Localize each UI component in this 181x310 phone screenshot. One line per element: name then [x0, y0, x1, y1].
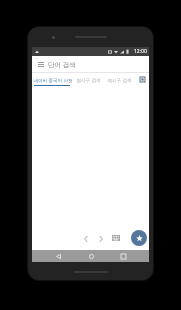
button[interactable]: Menu	[36, 60, 45, 69]
button[interactable]: 예시구 검색	[104, 73, 135, 86]
button[interactable]: 명사구 검색	[73, 73, 104, 86]
button[interactable]: Favorite	[131, 230, 147, 246]
staticText: 12:00	[134, 48, 147, 55]
button[interactable]: Next	[95, 233, 106, 244]
staticText: 명사구 검색	[76, 77, 101, 83]
button[interactable]: Previous	[80, 233, 91, 244]
button[interactable]: Keyboard	[110, 232, 122, 244]
button[interactable]: Menu	[32, 56, 149, 72]
button[interactable]: Back	[52, 250, 64, 262]
staticText: 네이버 중국어 사전	[33, 77, 73, 83]
staticText: 예시구 검색	[107, 77, 132, 83]
staticText: 단어 검색	[48, 60, 76, 69]
button[interactable]: 네이버 중국어 사전	[32, 73, 73, 86]
button[interactable]: Recents	[117, 250, 129, 262]
button[interactable]: Home	[85, 250, 97, 262]
button[interactable]: Options	[135, 73, 149, 86]
